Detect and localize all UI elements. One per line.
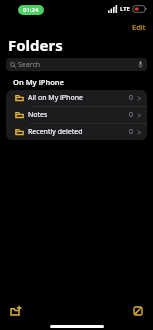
staticText: All on My iPhone (28, 93, 83, 103)
staticText: 0 (128, 127, 133, 137)
button[interactable]: All on My iPhone (6, 90, 147, 106)
button[interactable]: Search (6, 58, 147, 71)
staticText: On My iPhone (13, 77, 64, 87)
button[interactable]: Recently deleted (6, 124, 147, 140)
button[interactable]: New Note (130, 303, 146, 319)
button[interactable]: Notes (6, 107, 147, 123)
staticText: 0 (128, 93, 133, 103)
button[interactable]: Edit (130, 21, 148, 33)
staticText: 01:24 (23, 6, 39, 14)
staticText: Notes (28, 110, 48, 120)
staticText: LTE (120, 5, 130, 13)
staticText: Search (18, 60, 41, 70)
staticText: 0 (128, 110, 133, 120)
button[interactable]: New Folder (7, 303, 23, 319)
staticText: Edit (132, 22, 146, 32)
staticText: Recently deleted (28, 127, 83, 137)
staticText: Folders (8, 35, 63, 55)
